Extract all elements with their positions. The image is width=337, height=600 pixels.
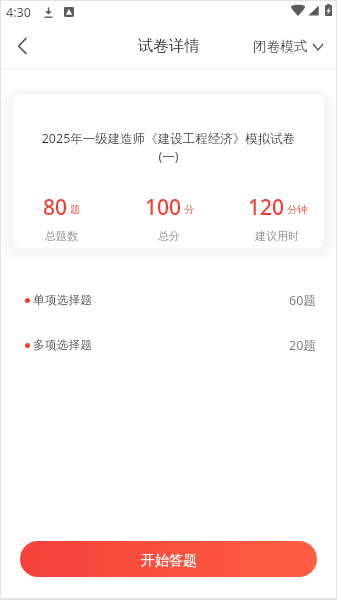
staticText: 120 (248, 193, 285, 222)
staticText: 2025年一级建造师《建设工程经济》模拟试卷(一) (35, 130, 302, 165)
staticText: 80 (43, 193, 68, 222)
staticText: 分钟 (287, 203, 307, 216)
button[interactable]: 多项选择题 (0, 337, 337, 354)
staticText: 题 (70, 203, 80, 216)
button[interactable]: Back (0, 24, 44, 68)
staticText: 分 (184, 203, 194, 216)
staticText: 闭卷模式 (253, 38, 308, 55)
staticText: 100 (145, 193, 182, 222)
staticText: 4:30 (6, 4, 31, 21)
button[interactable]: 开始答题 (20, 541, 317, 577)
staticText: 多项选择题 (33, 338, 92, 353)
staticText: 单项选择题 (33, 293, 92, 308)
staticText: 60题 (289, 292, 316, 309)
button[interactable]: 闭卷模式 (253, 30, 323, 63)
staticText: 20题 (289, 337, 316, 354)
staticText: 建议用时 (255, 229, 299, 243)
staticText: 总分 (158, 229, 180, 243)
staticText: 试卷详情 (138, 36, 200, 56)
button[interactable]: 单项选择题 (0, 292, 337, 309)
staticText: 开始答题 (141, 552, 197, 570)
staticText: 总题数 (45, 229, 78, 243)
